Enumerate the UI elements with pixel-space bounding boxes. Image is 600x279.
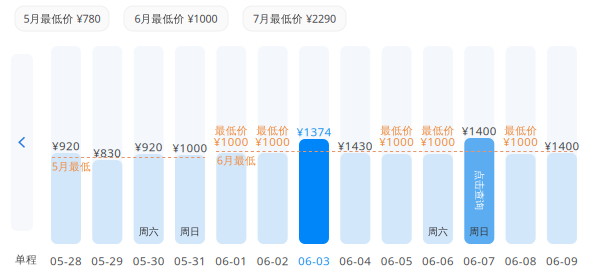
- button[interactable]: 6月最低价 ¥1000: [124, 6, 228, 31]
- button[interactable]: 05-28: [51, 153, 81, 244]
- staticText: ¥830: [93, 145, 121, 161]
- staticText: 06-03: [298, 253, 330, 269]
- staticText: 最低价: [421, 124, 454, 137]
- button[interactable]: 7月最低价 ¥2290: [243, 6, 346, 31]
- button[interactable]: 06-04: [340, 153, 370, 244]
- staticText: 05-28: [50, 253, 82, 269]
- button[interactable]: 06-08: [506, 154, 536, 244]
- staticText: ¥1000: [172, 140, 207, 156]
- staticText: 06-05: [381, 253, 413, 269]
- staticText: ¥1000: [255, 134, 290, 149]
- staticText: 5月最低价 ¥780: [23, 11, 100, 26]
- staticText: ¥1400: [544, 138, 579, 154]
- staticText: ¥920: [135, 139, 163, 155]
- button[interactable]: 06-01: [216, 153, 246, 244]
- button[interactable]: Earlier dates: [11, 54, 33, 231]
- staticText: 05-30: [133, 253, 165, 269]
- staticText: 最低价: [380, 124, 413, 137]
- staticText: 单程: [15, 253, 37, 266]
- button[interactable]: 06-02: [258, 153, 288, 244]
- staticText: 7月最低价 ¥2290: [253, 11, 336, 26]
- staticText: 05-29: [91, 253, 123, 269]
- staticText: 点击查询: [459, 184, 499, 196]
- button[interactable]: 06-03: [299, 139, 329, 244]
- staticText: 最低价: [256, 124, 289, 137]
- staticText: 6月最低价 ¥1000: [134, 11, 217, 26]
- button[interactable]: 06-07: [464, 138, 494, 244]
- staticText: 06-04: [339, 253, 371, 269]
- button[interactable]: 05-30: [134, 154, 164, 244]
- button[interactable]: 06-09: [547, 153, 577, 244]
- button[interactable]: 05-29: [92, 160, 122, 244]
- staticText: 最低价: [504, 124, 537, 137]
- button[interactable]: 05-31: [175, 155, 205, 244]
- staticText: 06-09: [546, 253, 578, 269]
- staticText: 6月最低: [217, 153, 256, 167]
- staticText: ¥1000: [503, 134, 538, 149]
- staticText: ¥1000: [379, 134, 414, 149]
- staticText: 06-07: [463, 253, 495, 269]
- staticText: 5月最低: [52, 159, 91, 173]
- button[interactable]: 5月最低价 ¥780: [15, 6, 109, 31]
- staticText: 05-31: [174, 253, 206, 269]
- staticText: ¥1430: [338, 138, 373, 154]
- staticText: 周日: [469, 226, 489, 238]
- staticText: ¥920: [52, 138, 80, 154]
- staticText: 06-01: [215, 253, 247, 269]
- staticText: 周六: [428, 226, 448, 238]
- staticText: 06-02: [257, 253, 289, 269]
- staticText: ¥1000: [214, 134, 249, 149]
- staticText: 06-06: [422, 253, 454, 269]
- button[interactable]: 06-05: [382, 154, 412, 244]
- staticText: 周日: [180, 226, 200, 238]
- button[interactable]: 06-06: [423, 154, 453, 244]
- staticText: ¥1400: [462, 123, 497, 139]
- staticText: 06-08: [505, 253, 537, 269]
- staticText: ¥1374: [296, 124, 331, 140]
- staticText: 最低价: [215, 124, 248, 137]
- staticText: ¥1000: [420, 134, 455, 149]
- staticText: 周六: [139, 226, 159, 238]
